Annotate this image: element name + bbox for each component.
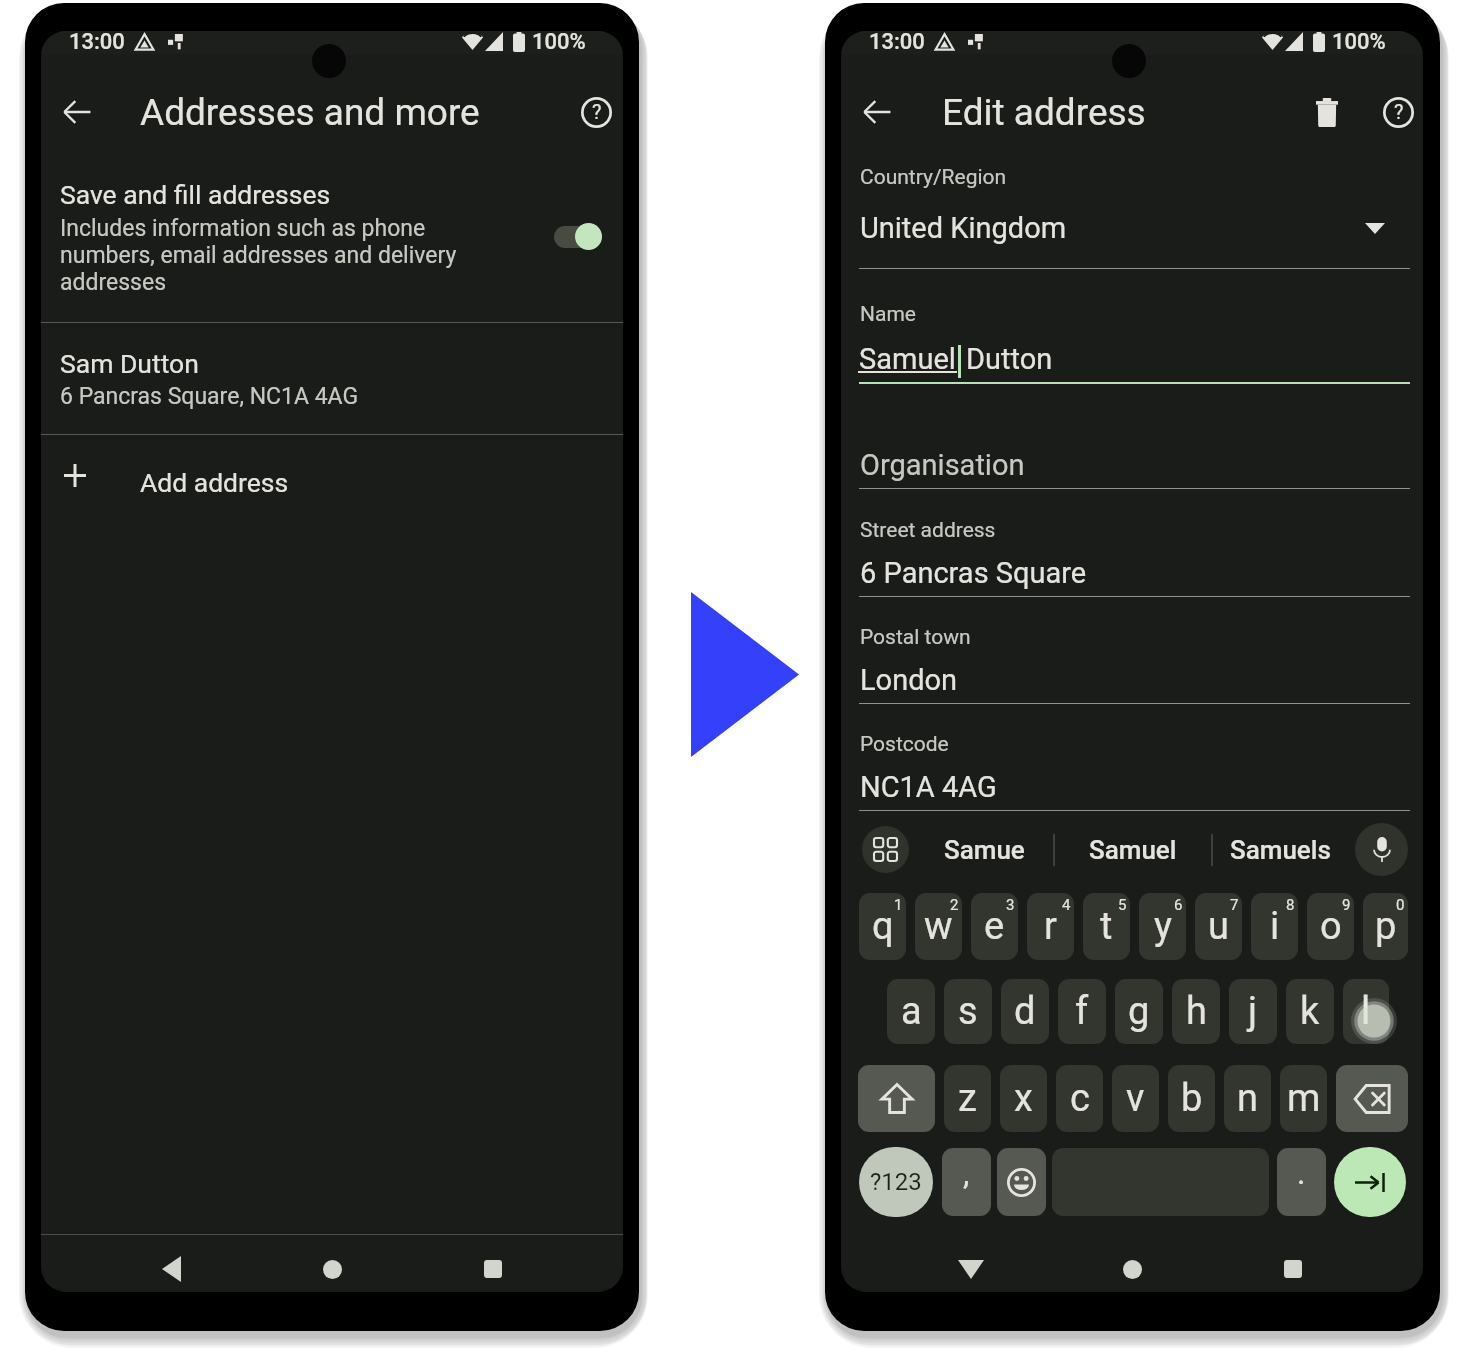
staticText: 100% bbox=[1332, 31, 1386, 52]
button[interactable]: Keyboard settings bbox=[862, 826, 909, 873]
button[interactable]: Back bbox=[852, 87, 902, 137]
staticText: 6 bbox=[1174, 896, 1183, 914]
button[interactable]: Next field bbox=[1334, 1147, 1406, 1217]
button[interactable]: d bbox=[1001, 979, 1049, 1044]
staticText: r bbox=[1044, 904, 1057, 949]
staticText: 13:00 bbox=[869, 31, 925, 52]
button[interactable]: Recents bbox=[468, 1244, 518, 1292]
button[interactable]: l bbox=[1343, 979, 1389, 1044]
button[interactable]: Organisation bbox=[841, 431, 1423, 488]
button[interactable]: Help bbox=[571, 87, 621, 137]
button[interactable]: Postcode bbox=[841, 702, 1423, 810]
button[interactable]: b bbox=[1168, 1065, 1215, 1132]
staticText: Add address bbox=[140, 467, 289, 498]
button[interactable]: e bbox=[971, 893, 1018, 960]
staticText: v bbox=[1126, 1076, 1145, 1121]
button[interactable]: k bbox=[1286, 979, 1334, 1044]
staticText: United Kingdom bbox=[860, 211, 1067, 245]
button[interactable]: Street address bbox=[841, 488, 1423, 596]
staticText: Sam Dutton bbox=[60, 348, 199, 379]
staticText: Postal town bbox=[860, 625, 971, 650]
staticText: w bbox=[924, 904, 953, 949]
button[interactable]: j bbox=[1229, 979, 1277, 1044]
button[interactable]: i bbox=[1251, 893, 1298, 960]
button[interactable]: Samuels bbox=[1213, 826, 1347, 873]
button[interactable]: Save and fill addresses bbox=[41, 165, 623, 322]
button[interactable]: Addresses and more bbox=[140, 87, 560, 137]
staticText: Street address bbox=[860, 518, 996, 543]
button[interactable]: w bbox=[915, 893, 962, 960]
staticText: j bbox=[1248, 989, 1258, 1034]
button[interactable]: x bbox=[1000, 1065, 1047, 1132]
button[interactable]: Recents bbox=[1268, 1244, 1318, 1292]
staticText: n bbox=[1237, 1076, 1258, 1121]
button[interactable]: Country/Region bbox=[841, 151, 1423, 268]
staticText: f bbox=[1075, 989, 1089, 1034]
button[interactable]: Backspace bbox=[1336, 1065, 1408, 1132]
button[interactable]: g bbox=[1115, 979, 1163, 1044]
button[interactable]: t bbox=[1083, 893, 1130, 960]
button[interactable]: y bbox=[1139, 893, 1186, 960]
staticText: Samuel bbox=[859, 342, 956, 376]
staticText: d bbox=[1014, 989, 1036, 1034]
button[interactable]: . bbox=[1277, 1148, 1326, 1216]
button[interactable]: , bbox=[942, 1148, 991, 1216]
button[interactable]: Home bbox=[307, 1244, 357, 1292]
button[interactable]: Back bbox=[146, 1244, 196, 1292]
button[interactable]: Home bbox=[1107, 1244, 1157, 1292]
button[interactable]: Voice input bbox=[1355, 823, 1408, 876]
button[interactable]: q bbox=[859, 893, 906, 960]
button[interactable]: Delete bbox=[1302, 87, 1352, 137]
button[interactable]: Name bbox=[841, 281, 1423, 383]
button[interactable]: c bbox=[1056, 1065, 1103, 1132]
staticText: g bbox=[1128, 989, 1150, 1034]
staticText: k bbox=[1300, 989, 1320, 1034]
button[interactable]: Back bbox=[52, 87, 102, 137]
button[interactable]: p bbox=[1363, 893, 1408, 960]
button[interactable]: Add address bbox=[41, 435, 623, 529]
staticText: c bbox=[1070, 1076, 1090, 1121]
button[interactable]: u bbox=[1195, 893, 1242, 960]
staticText: ?123 bbox=[870, 1168, 922, 1196]
staticText: s bbox=[958, 989, 978, 1034]
button[interactable]: h bbox=[1172, 979, 1220, 1044]
button[interactable]: z bbox=[944, 1065, 991, 1132]
staticText: q bbox=[872, 904, 894, 949]
button[interactable]: Edit address bbox=[942, 87, 1242, 137]
button[interactable]: r bbox=[1027, 893, 1074, 960]
button[interactable]: v bbox=[1112, 1065, 1159, 1132]
staticText: ? bbox=[592, 100, 602, 123]
staticText: 13:00 bbox=[69, 31, 125, 52]
button[interactable]: Sam Dutton bbox=[41, 323, 623, 434]
button[interactable]: o bbox=[1307, 893, 1354, 960]
button[interactable]: Samue bbox=[912, 826, 1056, 873]
button[interactable]: m bbox=[1280, 1065, 1327, 1132]
staticText: m bbox=[1287, 1076, 1321, 1121]
staticText: 6 Pancras Square bbox=[860, 556, 1087, 590]
button[interactable]: ?123 bbox=[859, 1147, 933, 1217]
button[interactable]: a bbox=[887, 979, 935, 1044]
staticText: 7 bbox=[1230, 896, 1239, 914]
staticText: 8 bbox=[1286, 896, 1295, 914]
button[interactable]: s bbox=[944, 979, 992, 1044]
button[interactable]: Emoji bbox=[997, 1148, 1046, 1216]
staticText: Postcode bbox=[860, 732, 949, 757]
button[interactable]: n bbox=[1224, 1065, 1271, 1132]
button[interactable]: Help bbox=[1373, 87, 1423, 137]
button[interactable]: f bbox=[1058, 979, 1106, 1044]
button[interactable]: Postal town bbox=[841, 595, 1423, 703]
staticText: 6 Pancras Square, NC1A 4AG bbox=[60, 383, 359, 410]
staticText: 4 bbox=[1062, 896, 1071, 914]
staticText: y bbox=[1154, 904, 1172, 949]
staticText: 3 bbox=[1006, 896, 1015, 914]
button[interactable]: Shift bbox=[858, 1065, 935, 1132]
button[interactable]: Hide keyboard bbox=[946, 1244, 996, 1292]
staticText: 2 bbox=[950, 896, 959, 914]
button[interactable]: Samuel bbox=[1061, 826, 1205, 873]
staticText: Name bbox=[860, 302, 916, 327]
staticText: 1 bbox=[894, 896, 903, 914]
staticText: 100% bbox=[532, 31, 586, 52]
staticText: Includes information such as phone numbe… bbox=[60, 215, 480, 296]
staticText: a bbox=[901, 989, 922, 1034]
